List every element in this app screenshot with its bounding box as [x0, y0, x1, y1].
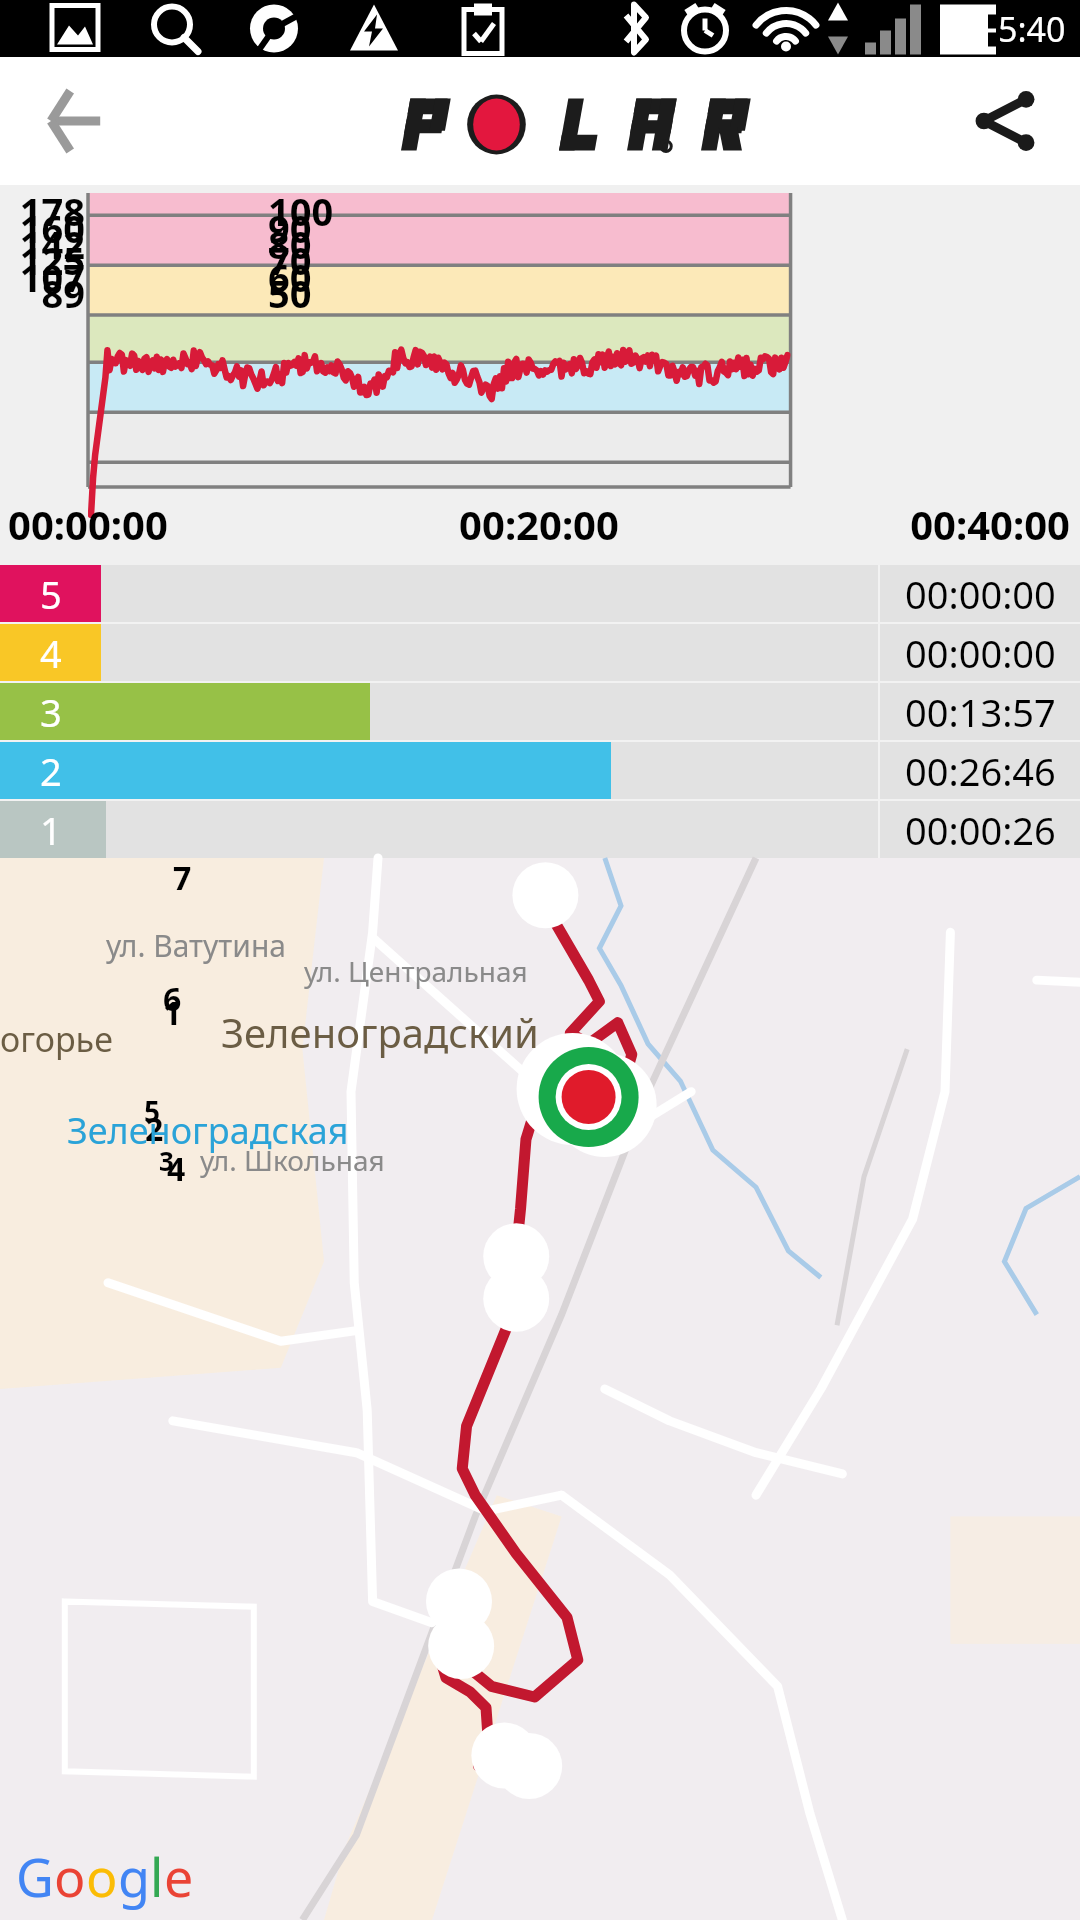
staticText: o [54, 1841, 86, 1912]
staticText: 1 [163, 991, 182, 1035]
staticText: 80 [268, 218, 338, 270]
staticText: l [150, 1841, 164, 1912]
staticText: 125 [0, 234, 85, 286]
staticText: 142 [0, 218, 85, 270]
staticText: 3 [40, 686, 62, 738]
staticText: 2 [40, 745, 62, 797]
staticText: 00:00:00 [905, 627, 1056, 679]
button[interactable]: 2 [0, 742, 1080, 799]
staticText: 107 [0, 251, 85, 303]
staticText: 89 [0, 267, 85, 319]
staticText: 50 [268, 267, 338, 319]
staticText: g [118, 1841, 150, 1912]
staticText: 00:00:26 [905, 804, 1056, 856]
staticText: ул. Центральная [304, 952, 528, 990]
staticText: 4 [167, 1147, 186, 1191]
staticText: 00:40:00 [716, 497, 1070, 551]
staticText: 60 [268, 251, 338, 303]
staticText: 00:20:00 [362, 497, 716, 551]
button[interactable]: 7 [0, 858, 1080, 1920]
staticText: 160 [0, 202, 85, 254]
staticText: 3 [159, 1143, 174, 1178]
staticText: G [16, 1841, 54, 1912]
staticText: o [86, 1841, 118, 1912]
staticText: 00:26:46 [905, 745, 1056, 797]
staticText: 5 [144, 1092, 161, 1130]
staticText: 178 [0, 185, 85, 237]
staticText: Зеленоградская [67, 1106, 349, 1155]
staticText: ул. Ватутина [106, 925, 286, 966]
button[interactable]: Share [930, 57, 1080, 185]
staticText: 00:13:57 [905, 686, 1056, 738]
staticText: 7 [173, 856, 192, 900]
staticText: 6 [163, 977, 182, 1021]
staticText: ул. Школьная [200, 1141, 385, 1179]
staticText: 1 [40, 804, 62, 856]
button[interactable]: 4 [0, 624, 1080, 681]
staticText: огорье [0, 1016, 113, 1062]
staticText: 5:40 [998, 6, 1066, 52]
staticText: 2 [145, 1107, 164, 1151]
staticText: 100 [268, 185, 338, 237]
button[interactable]: 3 [0, 683, 1080, 740]
staticText: 00:00:00 [905, 568, 1056, 620]
staticText: Зеленоградский [221, 1005, 539, 1059]
staticText: e [164, 1841, 194, 1912]
staticText: 00:00:00 [8, 497, 362, 551]
staticText: 90 [268, 202, 338, 254]
button[interactable]: 5 [0, 565, 1080, 622]
staticText: 5 [40, 568, 62, 620]
button[interactable]: Back [0, 57, 150, 185]
staticText: 4 [40, 627, 62, 679]
button[interactable]: 1 [0, 801, 1080, 858]
staticText: 70 [268, 234, 338, 286]
